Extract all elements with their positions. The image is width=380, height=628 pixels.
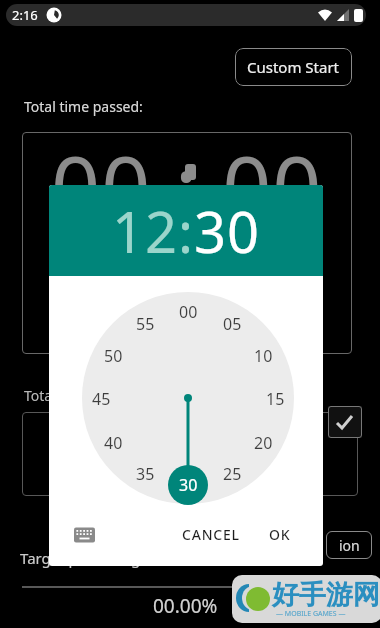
staticText: 00 : 00 — [51, 127, 323, 244]
staticText: 25 — [223, 463, 242, 483]
staticText: Total time remaining: — [24, 386, 164, 405]
staticText: 10 — [254, 345, 273, 365]
staticText: Custom Start — [247, 57, 340, 77]
staticText: Total time passed: — [24, 97, 143, 116]
staticText: 45 — [92, 388, 111, 408]
button[interactable]: Custom Start — [235, 48, 352, 86]
staticText: 55 — [136, 313, 155, 333]
staticText: 00.00% — [153, 593, 218, 619]
staticText: OK — [269, 525, 291, 544]
button[interactable] — [73, 526, 97, 544]
button[interactable]: ion — [326, 531, 372, 559]
staticText: 30 — [179, 474, 198, 496]
staticText: 20 — [254, 432, 273, 452]
staticText: Target percentage: — [20, 548, 153, 568]
button[interactable]: OK — [256, 518, 304, 550]
staticText: 12:30 — [112, 193, 261, 269]
staticText: 50 — [104, 345, 123, 365]
staticText: 好手游网 — [272, 578, 380, 612]
staticText: 05 — [223, 313, 242, 333]
button[interactable]: 30 — [168, 465, 208, 505]
staticText: 00 — [179, 301, 198, 321]
staticText: 15 — [266, 388, 285, 408]
staticText: 2:16 — [12, 6, 38, 24]
button[interactable]: CANCEL — [174, 518, 248, 550]
staticText: ion — [339, 536, 360, 555]
staticText: 40 — [104, 432, 123, 452]
staticText: — MOBILE GAMES — — [276, 609, 346, 619]
staticText: CANCEL — [182, 525, 240, 544]
staticText: 35 — [136, 463, 155, 483]
